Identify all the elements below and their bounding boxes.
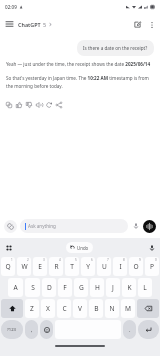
- staticText: R: [54, 262, 59, 271]
- button[interactable]: K: [122, 278, 136, 297]
- button[interactable]: Good response: [14, 100, 24, 110]
- button[interactable]: R: [49, 257, 63, 276]
- button[interactable]: O: [129, 257, 143, 276]
- button[interactable]: C: [57, 299, 71, 318]
- button[interactable]: F: [58, 278, 72, 297]
- button[interactable]: Keyboard toolbar: [2, 241, 15, 254]
- button[interactable]: More options: [145, 18, 158, 31]
- button[interactable]: V: [73, 299, 87, 318]
- button[interactable]: W: [17, 257, 31, 276]
- staticText: Y: [86, 262, 90, 271]
- button[interactable]: Attach file: [4, 220, 17, 233]
- button[interactable]: T: [65, 257, 79, 276]
- staticText: E: [38, 262, 42, 271]
- button[interactable]: J: [106, 278, 120, 297]
- button[interactable]: A: [8, 278, 23, 297]
- staticText: C: [62, 304, 67, 313]
- staticText: W: [21, 262, 28, 271]
- staticText: 9: [139, 258, 141, 262]
- staticText: K: [127, 283, 132, 292]
- button[interactable]: D: [42, 278, 56, 297]
- button[interactable]: Is there a date on the receipt?: [77, 40, 154, 56]
- button[interactable]: Regenerate: [44, 100, 54, 110]
- button[interactable]: M: [121, 299, 135, 318]
- button[interactable]: U: [97, 257, 111, 276]
- button[interactable]: Bad response: [24, 100, 34, 110]
- button[interactable]: Voice typing: [145, 241, 158, 254]
- button[interactable]: Symbols: [1, 320, 23, 339]
- button[interactable]: Dictate: [130, 220, 142, 232]
- staticText: T: [70, 262, 74, 271]
- staticText: 1: [11, 258, 13, 262]
- staticText: Q: [5, 262, 11, 271]
- button[interactable]: I: [113, 257, 127, 276]
- button[interactable]: P: [145, 257, 159, 276]
- staticText: J: [112, 283, 114, 292]
- staticText: 5: [75, 258, 77, 262]
- button[interactable]: New chat: [129, 16, 145, 32]
- button[interactable]: G: [74, 278, 88, 297]
- staticText: 8: [123, 258, 125, 262]
- staticText: N: [109, 304, 115, 313]
- staticText: Yeah — just under the time, the receipt …: [6, 61, 151, 67]
- button[interactable]: Copy: [4, 100, 14, 110]
- staticText: H: [95, 283, 100, 292]
- staticText: X: [46, 304, 50, 313]
- staticText: 3: [43, 258, 45, 262]
- staticText: ?123: [7, 327, 17, 333]
- staticText: M: [125, 304, 131, 313]
- button[interactable]: Comma: [25, 320, 38, 339]
- staticText: Ask anything: [28, 223, 56, 229]
- staticText: 7: [107, 258, 109, 262]
- button[interactable]: Shift: [1, 299, 23, 318]
- staticText: ChatGPT: [18, 21, 41, 28]
- button[interactable]: H: [90, 278, 104, 297]
- staticText: L: [143, 283, 147, 292]
- staticText: 2: [27, 258, 29, 262]
- staticText: .: [129, 326, 131, 333]
- staticText: Undo: [77, 245, 89, 251]
- button[interactable]: N: [105, 299, 119, 318]
- staticText: Is there a date on the receipt?: [83, 45, 148, 51]
- staticText: G: [79, 283, 84, 292]
- button[interactable]: Y: [81, 257, 95, 276]
- staticText: 5: [43, 21, 47, 28]
- button[interactable]: Ask anything: [20, 219, 128, 233]
- button[interactable]: X: [41, 299, 55, 318]
- button[interactable]: L: [138, 278, 152, 297]
- staticText: 4: [59, 258, 61, 262]
- button[interactable]: E: [33, 257, 47, 276]
- button[interactable]: ChatGPT: [17, 19, 54, 30]
- staticText: 6: [91, 258, 93, 262]
- staticText: S: [31, 283, 35, 292]
- button[interactable]: Voice mode: [143, 220, 156, 233]
- staticText: 0: [155, 258, 157, 262]
- staticText: I: [119, 262, 122, 271]
- staticText: A: [13, 283, 18, 292]
- button[interactable]: Read aloud: [34, 100, 44, 110]
- staticText: F: [63, 283, 67, 292]
- staticText: B: [94, 304, 99, 313]
- staticText: D: [47, 283, 52, 292]
- staticText: O: [133, 262, 139, 271]
- button[interactable]: S: [25, 278, 40, 297]
- button[interactable]: Period: [123, 320, 136, 339]
- button[interactable]: Undo: [66, 242, 93, 253]
- staticText: V: [78, 304, 82, 313]
- staticText: ,: [31, 326, 33, 333]
- button[interactable]: B: [89, 299, 103, 318]
- staticText: U: [102, 262, 107, 271]
- button[interactable]: Enter: [138, 320, 159, 339]
- staticText: 02:09: [5, 4, 17, 10]
- button[interactable]: Q: [1, 257, 15, 276]
- staticText: Z: [30, 304, 34, 313]
- button[interactable]: Share: [54, 100, 64, 110]
- button[interactable]: Backspace: [137, 299, 159, 318]
- button[interactable]: Z: [25, 299, 39, 318]
- button[interactable]: Emoji: [40, 320, 53, 339]
- staticText: So that's yesterday in Japan time. The 1…: [6, 75, 154, 89]
- staticText: P: [150, 262, 154, 271]
- button[interactable]: Open menu: [1, 16, 17, 32]
